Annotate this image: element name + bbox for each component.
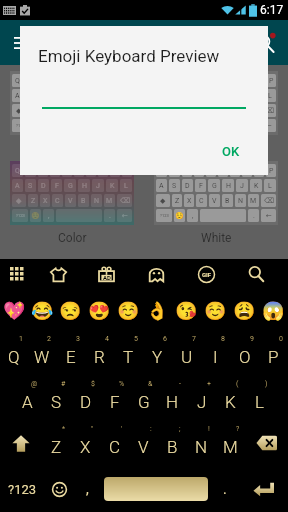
button[interactable]: @ [13,375,42,420]
staticText: Z [31,197,36,205]
staticText: Z [51,437,62,457]
button[interactable]: Emoji [259,290,288,330]
button[interactable]: 2 [28,330,56,375]
button[interactable]: Q [10,71,134,135]
button[interactable]: + [187,375,216,420]
button[interactable]: Search [231,259,281,290]
button[interactable]: Q [10,161,134,225]
staticText: A [22,392,33,412]
button[interactable]: OK [216,140,246,163]
button[interactable]: 1 [0,330,28,375]
button[interactable]: Emoji [230,290,259,330]
button[interactable]: 7 [172,330,201,375]
button[interactable]: 6 [143,330,172,375]
button[interactable]: Emoji [56,290,85,330]
button[interactable]: ? [216,420,245,466]
button[interactable]: - [158,375,187,420]
button[interactable]: Emoji [172,290,201,330]
button[interactable]: % [100,375,129,420]
staticText: X [187,197,192,205]
button[interactable]: Shift [0,420,42,466]
button[interactable]: : [129,420,158,466]
staticText: Emoji Keyboard Preview [38,46,220,66]
button[interactable]: 9 [230,330,259,375]
staticText: H [82,182,87,190]
button[interactable]: Emoji [114,290,143,330]
button[interactable]: . [212,466,238,512]
button[interactable]: Emoticons [132,259,181,290]
staticText: ⌫ [120,197,130,205]
staticText: Z [175,107,180,115]
staticText: B [225,197,230,205]
button[interactable]: Emoji [0,290,28,330]
button[interactable]: GIF [181,259,231,290]
button[interactable]: ) [245,375,274,420]
button[interactable]: ( [216,375,245,420]
button[interactable]: , [74,466,100,512]
button[interactable]: 0 [259,330,288,375]
staticText: S [51,392,62,412]
staticText: * [62,425,66,433]
button[interactable]: ; [158,420,187,466]
button[interactable]: $ [71,375,100,420]
staticText: B [167,437,178,457]
button[interactable]: Emoji [44,466,74,512]
staticText: L [124,182,128,190]
staticText: V [68,197,73,205]
button[interactable]: Themes [81,259,132,290]
button[interactable]: 5 [114,330,143,375]
staticText: Q [15,167,20,175]
button[interactable]: " [71,420,100,466]
button[interactable]: Menu [0,21,44,65]
button[interactable]: Q [154,71,278,135]
button[interactable]: 4 [85,330,114,375]
button[interactable]: 3 [56,330,85,375]
staticText: White [201,231,232,245]
button[interactable]: Emoji [201,290,230,330]
staticText: ← [266,122,272,130]
button[interactable]: ?123 [0,466,44,512]
staticText: ☺️ [117,300,140,321]
staticText: M [250,197,257,205]
staticText: 😂 [31,300,54,321]
button[interactable]: Space [104,477,208,501]
button[interactable]: Emoji [28,290,56,330]
button[interactable]: Emoji [85,290,114,330]
button[interactable]: Enter [238,466,288,512]
button[interactable]: 8 [201,330,230,375]
button[interactable]: Emoji [143,290,172,330]
button[interactable]: Stickers [35,259,81,290]
button[interactable]: ' [100,420,129,466]
staticText: . [223,481,227,497]
button[interactable]: Recent [0,259,35,290]
button[interactable]: Backspace [245,420,288,466]
button[interactable]: Q [154,161,278,225]
button[interactable]: Search [244,21,288,65]
button[interactable]: ! [187,420,216,466]
staticText: P [269,77,274,85]
staticText: X [187,107,192,115]
staticText: D [185,182,190,190]
button[interactable]: * [42,420,71,466]
staticText: A [15,92,20,100]
button[interactable]: # [42,375,71,420]
button[interactable]: & [129,375,158,420]
